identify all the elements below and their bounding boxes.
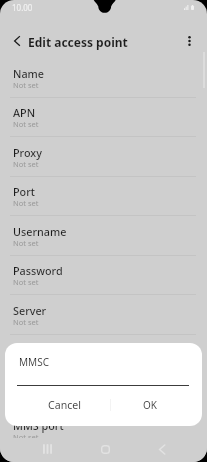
staticText: Not set — [13, 238, 39, 248]
staticText: Proxy — [13, 145, 42, 160]
staticText: Name — [13, 66, 44, 81]
staticText: Not set — [13, 119, 39, 129]
staticText: Server — [13, 303, 47, 318]
button[interactable]: Server — [0, 296, 207, 335]
staticText: 10.00 — [12, 2, 33, 13]
button[interactable]: MMS port — [0, 411, 207, 450]
staticText: Not set — [13, 80, 39, 90]
button[interactable]: MMS proxy — [0, 372, 207, 411]
staticText: Port — [13, 184, 35, 199]
button[interactable]: Port — [0, 177, 207, 216]
staticText: Cancel — [48, 398, 81, 412]
button[interactable]: More options — [176, 24, 206, 58]
staticText: Not set — [13, 317, 39, 327]
button[interactable]: OK — [111, 393, 189, 417]
staticText: APN — [13, 105, 36, 120]
button[interactable]: Navigate up — [2, 24, 32, 58]
staticText: Edit access point — [28, 34, 128, 50]
button[interactable]: Recents — [33, 437, 61, 461]
staticText: MMS port — [13, 418, 64, 433]
staticText: MMSC — [13, 342, 46, 357]
staticText: Not set — [13, 277, 39, 287]
staticText: OK — [143, 398, 157, 412]
staticText: MMS proxy — [13, 379, 71, 394]
button[interactable]: Username — [0, 217, 207, 256]
staticText: Not set — [13, 159, 39, 169]
button[interactable]: Proxy — [0, 138, 207, 177]
staticText: MMSC — [19, 355, 49, 369]
staticText: Password — [13, 263, 63, 278]
button[interactable]: Password — [0, 256, 207, 295]
staticText: Not set — [13, 356, 39, 366]
button[interactable]: Home — [91, 437, 119, 461]
staticText: Not set — [13, 432, 39, 442]
staticText: Username — [13, 224, 67, 239]
button[interactable]: Cancel — [19, 393, 110, 417]
button[interactable]: Name — [0, 59, 207, 98]
staticText: Not set — [13, 198, 39, 208]
button[interactable]: MMSC — [0, 335, 207, 374]
button[interactable]: APN — [0, 98, 207, 137]
